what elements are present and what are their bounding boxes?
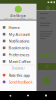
staticText: Disclaimer [12,67,25,70]
staticText: Meet Coffee [9,59,31,64]
staticText: My Account [9,31,30,37]
button[interactable]: Notifications [0,38,36,44]
staticText: ◀ [9,94,11,97]
button[interactable]: Bookmarks [0,44,36,51]
button[interactable]: My Account [0,31,36,38]
staticText: Bookmarks [9,45,30,50]
button[interactable]: Back [1,91,19,100]
button[interactable]: Home [19,91,37,100]
button[interactable]: Comment [45,54,49,58]
button[interactable]: Home [0,24,36,31]
staticText: Rate this app [9,72,30,78]
staticText: Home [9,25,20,30]
button[interactable]: Preferences [0,51,36,58]
button[interactable]: Send feedback [0,78,36,85]
button[interactable]: Compose [43,77,50,84]
button[interactable]: More options [50,5,55,11]
button[interactable]: Recents [37,91,55,100]
button[interactable]: Like [40,54,44,58]
staticText: Send feedback [9,79,33,84]
staticText: Preferences [9,52,30,57]
staticText: Notifications [9,38,30,44]
button[interactable]: Meet Coffee [0,58,36,65]
staticText: Alex Morgan [10,14,26,18]
button[interactable]: Search [45,5,50,11]
button[interactable]: Share [50,54,54,58]
staticText: ♡ [45,64,49,69]
button[interactable]: Rate this app [0,72,36,78]
staticText: alex.morgan@mail.com [4,18,32,21]
